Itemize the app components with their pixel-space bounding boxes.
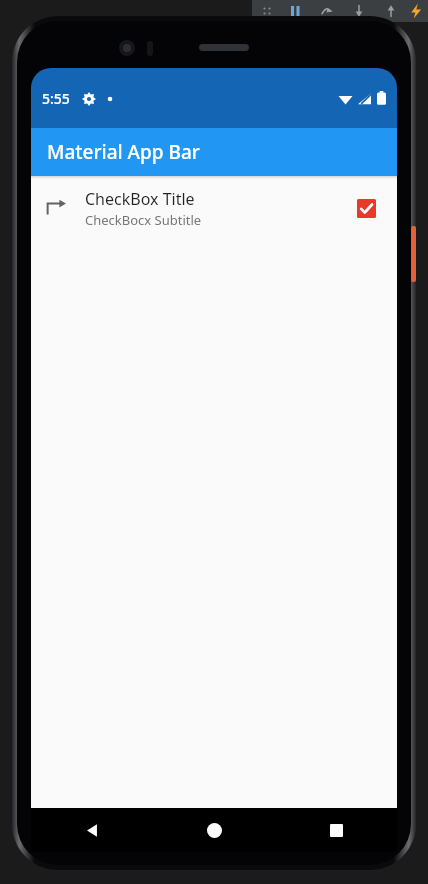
staticText: 5:55 — [42, 89, 70, 108]
staticText: CheckBocx Subtitle — [85, 211, 202, 229]
staticText: Material App Bar — [47, 139, 200, 165]
button[interactable]: Material App Bar — [31, 128, 397, 176]
button[interactable]: Checkbox, checked — [349, 191, 383, 225]
button[interactable]: Recent apps — [275, 808, 397, 852]
button[interactable]: Home — [153, 808, 275, 852]
staticText: CheckBox Title — [85, 188, 195, 210]
other: Turn right — [45, 197, 67, 219]
button[interactable]: Turn right — [31, 179, 397, 237]
button[interactable]: Back — [31, 808, 153, 852]
